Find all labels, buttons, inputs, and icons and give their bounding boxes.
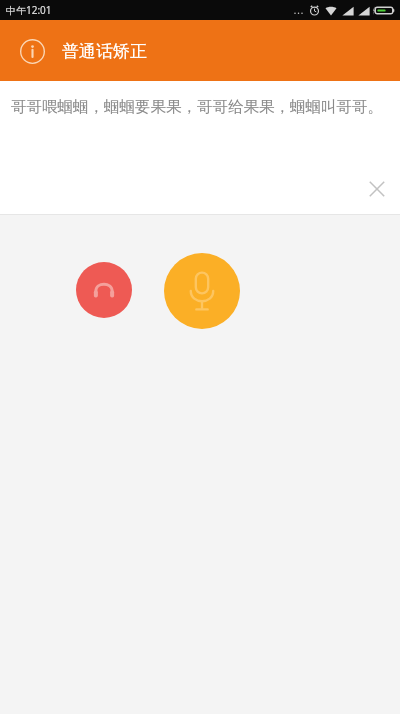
staticText: 哥哥喂蝈蝈，蝈蝈要果果，哥哥给果果，蝈蝈叫哥哥。 (11, 97, 383, 117)
button[interactable]: Info (16, 35, 48, 67)
staticText: 普通话矫正 (62, 41, 147, 62)
button[interactable]: Play recording (76, 262, 132, 318)
staticText: 中午12:01 (6, 3, 52, 17)
button[interactable]: Close (362, 174, 392, 204)
button[interactable]: Record (164, 253, 240, 329)
